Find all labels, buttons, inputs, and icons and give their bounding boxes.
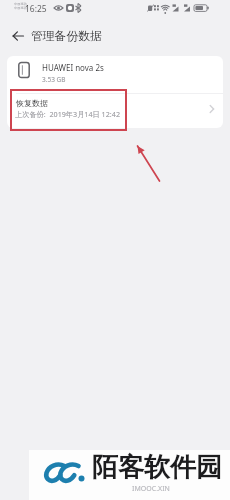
button[interactable]: 返回 bbox=[9, 27, 27, 45]
staticText: HUAWEI nova 2s bbox=[42, 62, 104, 73]
staticText: 中国移动 bbox=[14, 6, 27, 10]
staticText: 16:25 bbox=[25, 3, 47, 15]
staticText: 恢复数据 bbox=[16, 98, 48, 108]
staticText: 管理备份数据 bbox=[31, 29, 102, 44]
staticText: IMOOC.XIN bbox=[87, 484, 215, 494]
staticText: 上次备份: 2019年3月14日 12:42 bbox=[15, 109, 120, 119]
staticText: 3.53 GB bbox=[42, 75, 66, 84]
staticText: 陌客软件园 bbox=[92, 451, 222, 484]
button[interactable]: HUAWEI nova 2s bbox=[7, 56, 223, 93]
button[interactable]: 恢复数据 bbox=[7, 93, 223, 128]
staticText: 中国移动 bbox=[14, 2, 27, 6]
